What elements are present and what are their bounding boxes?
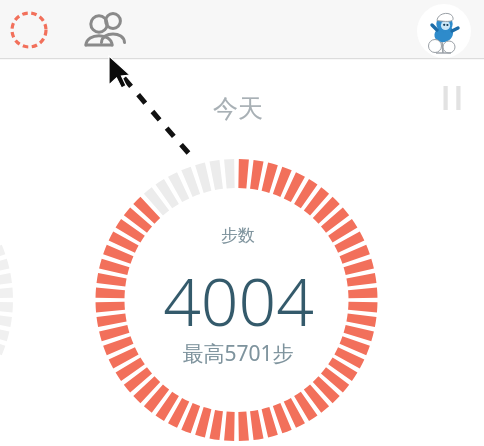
button[interactable]: Friends [78, 10, 128, 50]
staticText: 4004 [163, 255, 314, 327]
staticText: 步数 [221, 225, 255, 246]
button[interactable]: Pause [435, 80, 469, 116]
button[interactable]: Profile [417, 4, 471, 58]
button[interactable]: Activity ring [8, 11, 50, 49]
staticText: 今天 [213, 93, 263, 124]
staticText: 最高5701步 [182, 339, 294, 368]
